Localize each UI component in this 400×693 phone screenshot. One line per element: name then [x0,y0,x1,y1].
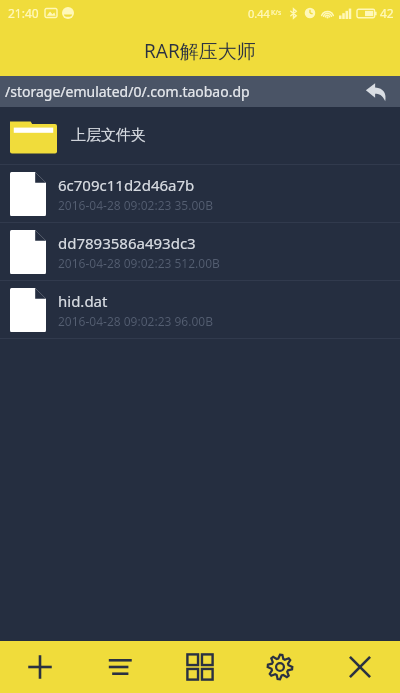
button[interactable]: Settings [240,641,320,693]
staticText: RAR解压大师 [144,38,256,64]
staticText: 0.44 [248,6,270,21]
button[interactable]: Back [352,76,400,107]
staticText: 上层文件夹 [71,126,146,145]
staticText: 2016-04-28 09:02:23 512.00B [58,255,220,271]
staticText: 42 [380,5,394,21]
staticText: dd7893586a493dc3 [58,233,196,253]
button[interactable]: Sort [80,641,160,693]
button[interactable]: Add [0,641,80,693]
button[interactable]: dd7893586a493dc3 [0,223,400,280]
button[interactable]: 上层文件夹 [0,107,400,164]
button[interactable]: 6c709c11d2d46a7b [0,165,400,222]
staticText: K/s [271,8,282,18]
staticText: hid.dat [58,291,108,311]
staticText: /storage/emulated/0/.com.taobao.dp [5,82,250,101]
button[interactable]: hid.dat [0,281,400,338]
staticText: 6c709c11d2d46a7b [58,175,195,195]
staticText: 2016-04-28 09:02:23 35.00B [58,197,213,213]
button[interactable]: Grid view [160,641,240,693]
staticText: 21:40 [8,5,39,21]
staticText: 2016-04-28 09:02:23 96.00B [58,313,213,329]
button[interactable]: Close [320,641,400,693]
